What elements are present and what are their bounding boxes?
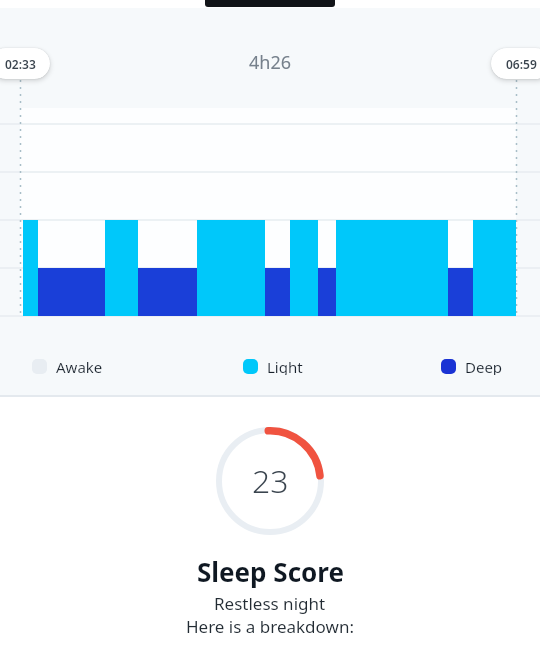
- button[interactable]: Deep: [441, 357, 503, 375]
- staticText: 23: [252, 459, 289, 503]
- staticText: Sleep Score: [197, 554, 344, 589]
- button[interactable]: 02:33: [0, 48, 50, 79]
- staticText: 06:59: [506, 56, 537, 72]
- button[interactable]: 06:59: [491, 48, 540, 79]
- button[interactable]: Awake: [32, 357, 103, 375]
- staticText: 02:33: [5, 56, 36, 72]
- staticText: Awake: [56, 357, 103, 375]
- staticText: Light: [267, 357, 303, 375]
- staticText: Deep: [465, 357, 503, 375]
- button[interactable]: Light: [243, 357, 303, 375]
- staticText: 4h26: [249, 50, 292, 75]
- staticText: Here is a breakdown:: [186, 615, 354, 638]
- staticText: Restless night: [214, 592, 326, 615]
